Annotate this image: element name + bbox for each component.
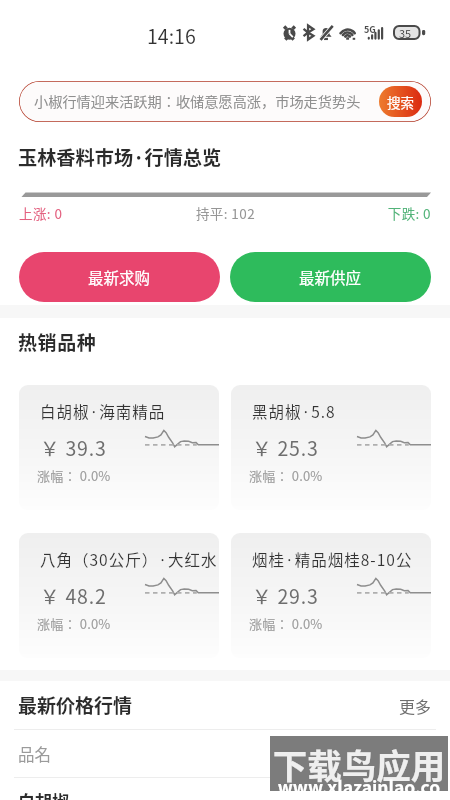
button[interactable]: 白胡椒 <box>18 778 432 800</box>
button[interactable]: 最新求购 <box>19 252 220 302</box>
button[interactable]: 烟桂·精品烟桂8-10公 <box>231 533 431 658</box>
staticText: 品名 <box>18 742 432 766</box>
staticText: 涨幅： 0.0% <box>37 466 111 485</box>
button[interactable]: 最新价格行情 <box>18 681 432 729</box>
staticText: ￥ 29.3 <box>252 581 319 609</box>
button[interactable]: 最新供应 <box>230 252 431 302</box>
staticText: ￥ 25.3 <box>252 433 319 461</box>
other: Bluetooth <box>303 25 314 40</box>
staticText: ￥ 39.3 <box>40 433 107 461</box>
staticText: 烟桂·精品烟桂8-10公 <box>252 548 413 570</box>
button[interactable]: 小椒行情迎来活跃期：收储意愿高涨，市场走货势头 <box>19 81 431 122</box>
other: Alarm <box>282 25 297 40</box>
other: Silent mode <box>319 25 333 40</box>
staticText: 小椒行情迎来活跃期：收储意愿高涨，市场走货势头 <box>34 91 361 112</box>
button[interactable]: 白胡椒·海南精品 <box>19 385 219 510</box>
staticText: 白胡椒·海南精品 <box>40 400 166 422</box>
staticText: 35 <box>399 25 412 40</box>
button[interactable]: 黑胡椒·5.8 <box>231 385 431 510</box>
staticText: 下跌: 0 <box>294 203 431 223</box>
staticText: 上涨: 0 <box>19 203 157 223</box>
staticText: 搜索 <box>387 92 414 112</box>
other: Battery 35% <box>393 25 425 40</box>
staticText: 持平: 102 <box>157 203 294 223</box>
staticText: 更多 <box>399 694 432 717</box>
staticText: 热销品种 <box>18 328 97 356</box>
staticText: 涨幅： 0.0% <box>37 614 111 633</box>
staticText: 黑胡椒·5.8 <box>252 400 336 422</box>
button[interactable]: 八角（30公斤）·大红水 <box>19 533 219 658</box>
staticText: 涨幅： 0.0% <box>249 466 323 485</box>
staticText: 最新价格行情 <box>18 691 399 719</box>
staticText: ￥ 48.2 <box>40 581 107 609</box>
staticText: 最新求购 <box>88 266 151 288</box>
other: 5G signal <box>364 24 387 40</box>
staticText: 涨幅： 0.0% <box>249 614 323 633</box>
staticText: 玉林香料市场·行情总览 <box>18 143 222 171</box>
staticText: 最新供应 <box>299 266 362 288</box>
staticText: www.xlazainlao.com <box>270 774 448 799</box>
staticText: 14:16 <box>147 21 196 49</box>
staticText: 八角（30公斤）·大红水 <box>40 548 218 570</box>
other: Wi-Fi <box>339 25 357 40</box>
staticText: 白胡椒 <box>18 788 432 800</box>
button[interactable]: 搜索 <box>379 86 422 117</box>
staticText: 下载鸟应用 <box>270 739 448 789</box>
staticText: 5G <box>364 23 376 36</box>
